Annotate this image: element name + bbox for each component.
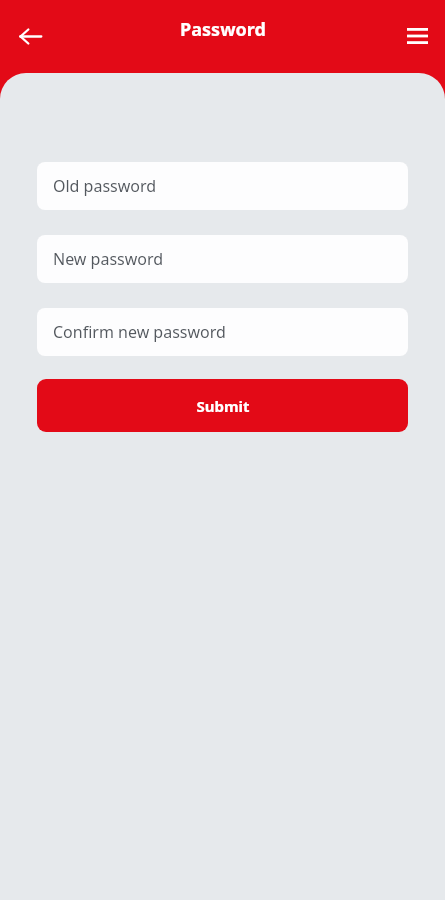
- button[interactable]: Menu: [395, 14, 439, 58]
- button[interactable]: Confirm new password: [37, 308, 408, 356]
- staticText: Confirm new password: [53, 321, 226, 343]
- staticText: Old password: [53, 175, 157, 197]
- button[interactable]: Back: [8, 14, 52, 58]
- staticText: New password: [53, 248, 164, 270]
- staticText: Password: [180, 17, 266, 42]
- staticText: Submit: [196, 396, 250, 416]
- button[interactable]: Old password: [37, 162, 408, 210]
- button[interactable]: New password: [37, 235, 408, 283]
- button[interactable]: Submit: [37, 379, 408, 432]
